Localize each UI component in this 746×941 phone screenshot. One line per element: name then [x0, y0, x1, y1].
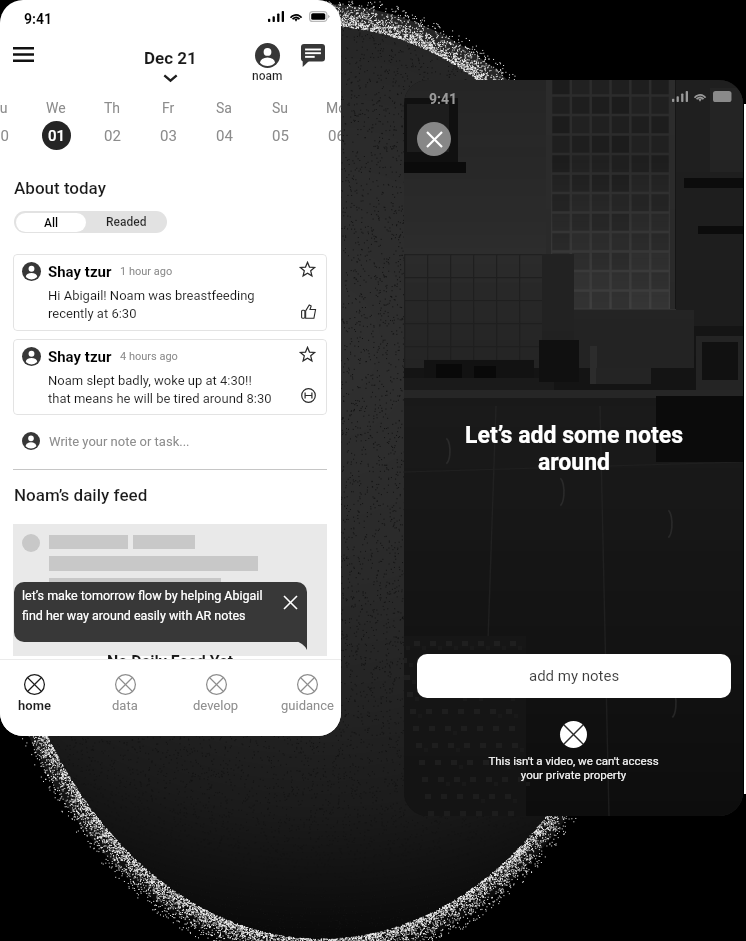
staticText: Hi Abigail! Noam was breastfeeding recen… — [48, 288, 298, 321]
button[interactable]: guidance — [265, 674, 341, 728]
staticText: add my notes — [529, 667, 620, 685]
button[interactable]: Close tip — [279, 591, 301, 613]
staticText: About today — [14, 178, 106, 198]
button[interactable]: Write your note or task... — [13, 425, 327, 457]
staticText: Shay tzur — [48, 348, 112, 366]
button[interactable]: data — [83, 674, 167, 728]
staticText: 4 hours ago — [120, 350, 178, 363]
staticText: noam — [252, 69, 283, 83]
button[interactable]: Shay tzur — [13, 339, 327, 415]
staticText: 01 — [48, 127, 66, 145]
button[interactable]: All — [16, 213, 86, 232]
staticText: home — [18, 698, 51, 713]
button[interactable]: Sa — [196, 100, 252, 150]
staticText: data — [112, 698, 138, 713]
button[interactable]: Dec 21 — [120, 48, 220, 82]
button[interactable]: Mo — [308, 100, 341, 150]
staticText: guidance — [281, 698, 334, 713]
staticText: Su — [272, 100, 289, 116]
staticText: All — [44, 216, 59, 230]
staticText: No Daily Feed Yet — [13, 652, 327, 671]
staticText: 05 — [272, 127, 289, 145]
staticText: Readed — [106, 215, 147, 229]
staticText: Write your note or task... — [49, 434, 190, 449]
staticText: Noam’s daily feed — [14, 485, 148, 505]
staticText: Sa — [216, 100, 232, 116]
staticText: Let’s add some notes around — [449, 422, 699, 475]
staticText: 9:41 — [24, 11, 53, 27]
button[interactable]: Th — [84, 100, 140, 150]
button[interactable]: Tu — [0, 100, 28, 150]
button[interactable]: Su — [252, 100, 308, 150]
staticText: Mo — [326, 100, 341, 116]
button[interactable]: Messages — [301, 43, 325, 67]
staticText: 06 — [328, 127, 341, 145]
staticText: develop — [193, 698, 239, 713]
staticText: Shay tzur — [48, 263, 112, 281]
staticText: 02 — [104, 127, 121, 145]
staticText: Noam slept badly, woke up at 4:30!! that… — [48, 373, 298, 406]
staticText: let’s make tomorrow flow by helping Abig… — [22, 588, 278, 623]
staticText: 30 — [0, 127, 9, 145]
button[interactable]: home — [0, 674, 76, 728]
staticText: 04 — [216, 127, 233, 145]
button[interactable]: Menu — [13, 47, 37, 63]
staticText: Dec 21 — [144, 48, 197, 68]
button[interactable]: add my notes — [417, 654, 731, 698]
button[interactable]: Shay tzur — [13, 254, 327, 331]
button[interactable]: noam — [245, 43, 289, 83]
button[interactable]: Fr — [140, 100, 196, 150]
button[interactable]: Close — [417, 122, 451, 156]
staticText: Th — [104, 100, 121, 116]
button[interactable]: We — [28, 100, 84, 150]
staticText: 03 — [160, 127, 177, 145]
staticText: 1 hour ago — [120, 265, 173, 278]
staticText: Tu — [0, 100, 8, 116]
staticText: Fr — [162, 100, 175, 116]
staticText: This isn't a video, we can't access your… — [404, 754, 743, 782]
button[interactable]: develop — [174, 674, 258, 728]
staticText: We — [46, 100, 66, 116]
button[interactable]: Readed — [86, 211, 167, 233]
staticText: 9:41 — [429, 91, 458, 107]
button[interactable]: Not a video — [560, 721, 587, 748]
